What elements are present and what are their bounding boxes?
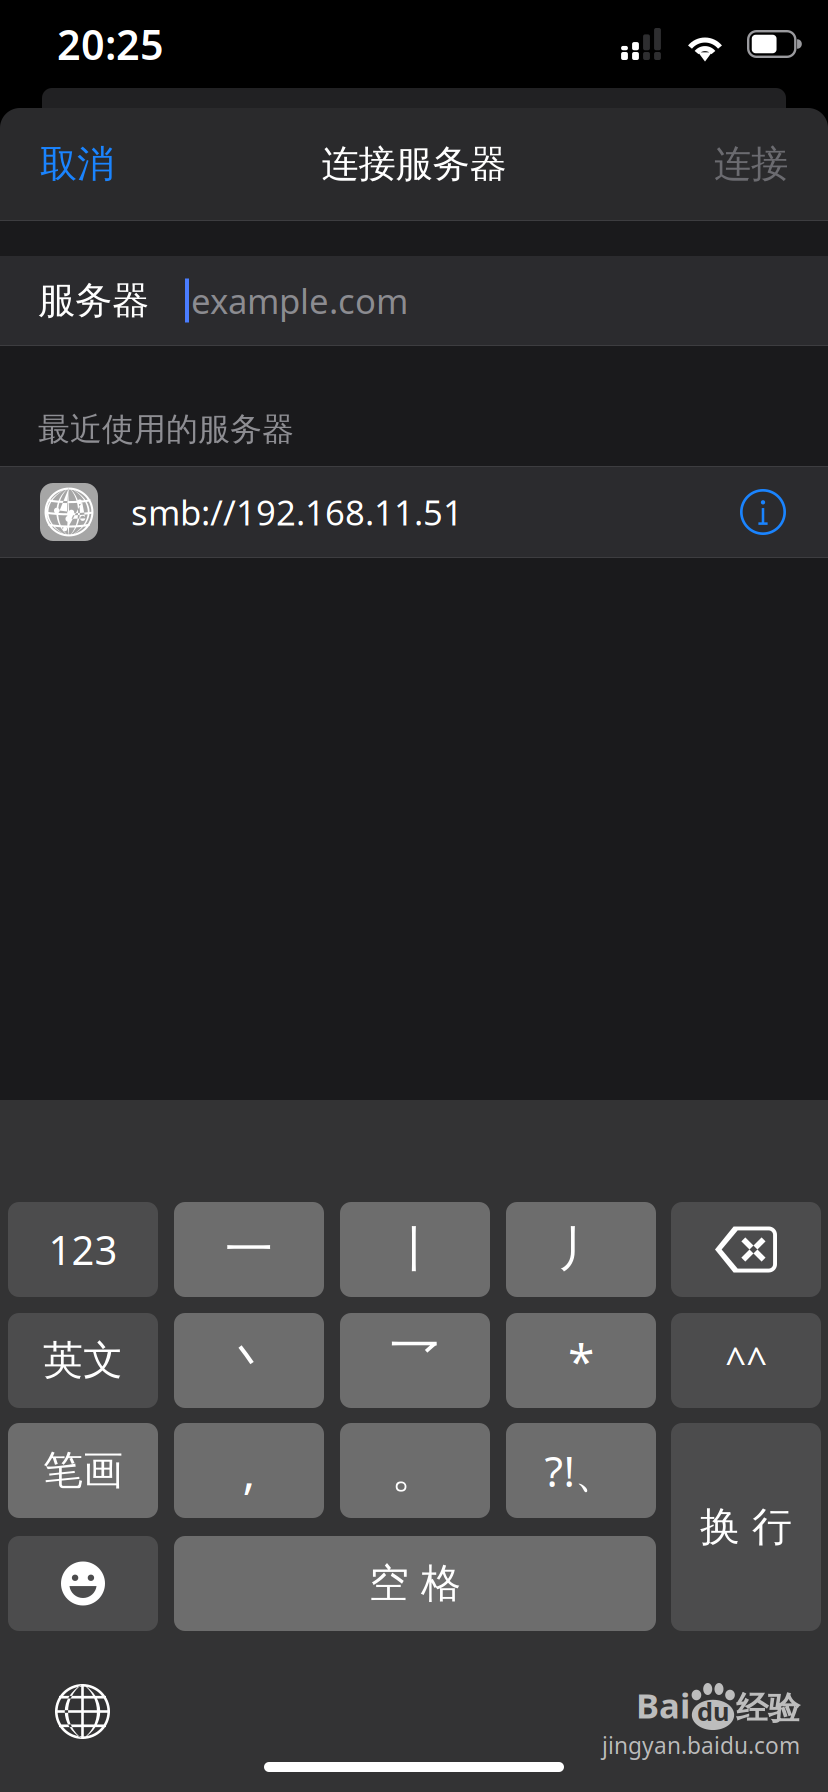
staticText: du xyxy=(697,1694,729,1728)
button[interactable] xyxy=(506,1423,656,1518)
button[interactable] xyxy=(8,1202,158,1297)
staticText: ^^ xyxy=(725,1336,767,1385)
button[interactable] xyxy=(340,1423,490,1518)
staticText: example.com xyxy=(191,277,408,323)
button[interactable] xyxy=(506,1202,656,1297)
staticText: 取消 xyxy=(40,141,114,187)
button[interactable] xyxy=(174,1202,324,1297)
button[interactable]: Emoji xyxy=(8,1536,158,1631)
staticText: 英文 xyxy=(43,1336,123,1385)
staticText: 一 xyxy=(225,1220,273,1279)
staticText: 经验 xyxy=(736,1689,800,1728)
staticText: Bai xyxy=(636,1682,690,1728)
staticText: 123 xyxy=(48,1223,117,1276)
staticText: 服务器 xyxy=(38,278,149,323)
staticText: 最近使用的服务器 xyxy=(38,410,294,449)
staticText: 丿 xyxy=(557,1220,605,1279)
button[interactable]: 取消 xyxy=(40,125,114,203)
staticText: 空 格 xyxy=(369,1559,461,1608)
staticText: * xyxy=(568,1329,594,1392)
staticText: 丨 xyxy=(391,1220,439,1279)
staticText: 笔画 xyxy=(43,1446,123,1495)
button[interactable] xyxy=(8,1423,158,1518)
button[interactable] xyxy=(174,1313,324,1408)
staticText: 换 行 xyxy=(700,1502,792,1551)
button[interactable] xyxy=(671,1423,821,1631)
staticText: 丶 xyxy=(225,1331,273,1390)
staticText: smb://192.168.11.51 xyxy=(131,489,463,535)
staticText: 连接 xyxy=(714,141,788,187)
button[interactable] xyxy=(340,1313,490,1408)
button[interactable]: Next keyboard xyxy=(41,1670,124,1753)
staticText: 乛 xyxy=(391,1331,439,1390)
button[interactable] xyxy=(174,1536,656,1631)
staticText: 。 xyxy=(391,1441,439,1500)
staticText: , xyxy=(242,1439,255,1502)
button[interactable] xyxy=(506,1313,656,1408)
button[interactable] xyxy=(340,1202,490,1297)
button[interactable] xyxy=(8,1313,158,1408)
button[interactable] xyxy=(174,1423,324,1518)
button[interactable] xyxy=(671,1313,821,1408)
button[interactable]: smb://192.168.11.51 xyxy=(0,467,828,557)
button[interactable]: 连接 xyxy=(714,125,788,203)
staticText: ?!、 xyxy=(544,1442,617,1499)
button[interactable]: Delete xyxy=(671,1202,821,1297)
staticText: 20:25 xyxy=(57,17,164,71)
staticText: jingyan.baidu.com xyxy=(602,1730,800,1760)
staticText: 连接服务器 xyxy=(321,141,506,187)
